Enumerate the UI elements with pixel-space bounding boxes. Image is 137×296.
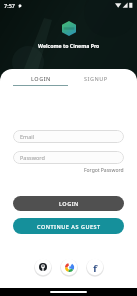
button[interactable]: Sign in with Google [60,258,78,276]
button[interactable]: Forgot Password [84,167,124,174]
button[interactable]: Sign in with GitHub [34,258,52,276]
button[interactable]: LOGIN [13,72,68,84]
staticText: CONTINUE AS GUEST [37,223,101,230]
staticText: LOGIN [31,75,51,82]
button[interactable]: Email [13,130,124,143]
staticText: LOGIN [59,200,79,207]
button[interactable]: SIGNUP [68,72,124,84]
staticText: f [93,262,98,272]
staticText: Email [20,133,35,140]
staticText: 7:57 [4,2,15,9]
staticText: Welcome to Cinema Pro [38,42,100,49]
staticText: SIGNUP [84,75,108,82]
button[interactable]: Password [13,151,124,164]
button[interactable]: CONTINUE AS GUEST [13,218,124,234]
staticText: Password [20,154,45,161]
button[interactable]: LOGIN [13,196,124,211]
button[interactable]: Sign in with Facebook [86,258,104,276]
